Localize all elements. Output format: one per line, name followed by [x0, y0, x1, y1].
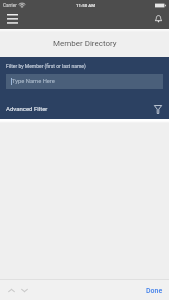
button[interactable]: Next field: [18, 281, 31, 300]
button[interactable]: Notifications: [149, 11, 169, 29]
staticText: Member Directory: [53, 39, 117, 48]
button[interactable]: Advanced Filter: [0, 100, 169, 116]
button[interactable]: Type Name Here: [6, 74, 163, 89]
button[interactable]: Done: [143, 283, 166, 297]
staticText: Advanced Filter: [6, 105, 48, 112]
staticText: Done: [146, 287, 163, 295]
staticText: 11:50 AM: [76, 3, 96, 8]
staticText: Filter by Member (first or last name): [6, 63, 86, 69]
button[interactable]: Open navigation menu: [1, 11, 24, 29]
staticText: Carrier: [3, 3, 17, 8]
staticText: Type Name Here: [12, 78, 55, 85]
button[interactable]: Previous field: [5, 281, 18, 300]
